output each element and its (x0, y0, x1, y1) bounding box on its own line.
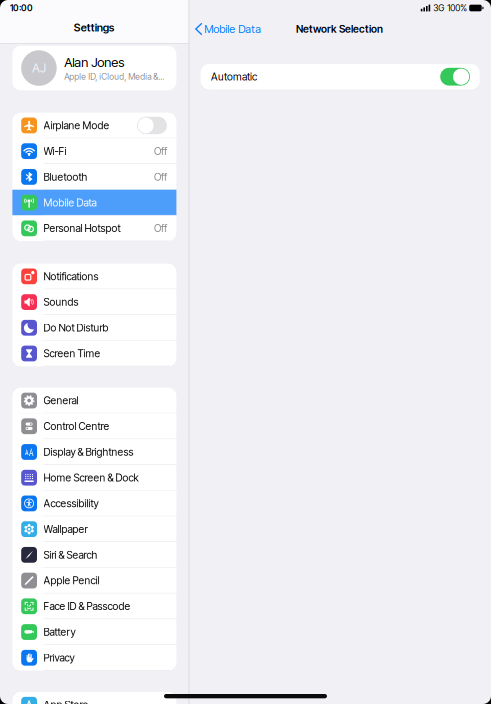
staticText: Home Screen & Dock (43, 471, 138, 484)
staticText: Automatic (211, 70, 257, 83)
staticText: Off (154, 222, 167, 235)
staticText: Mobile Data (43, 196, 96, 209)
staticText: Sounds (43, 296, 78, 308)
staticText: Off (154, 171, 167, 183)
button[interactable]: Apple Pencil (12, 568, 176, 593)
button[interactable]: Siri & Search (12, 542, 176, 568)
staticText: Face ID & Passcode (43, 600, 130, 613)
staticText: Battery (43, 626, 75, 638)
button[interactable]: AJ (12, 46, 176, 90)
button[interactable]: Face ID & Passcode (12, 593, 176, 619)
button[interactable]: Sounds (12, 289, 176, 315)
staticText: Settings (74, 21, 115, 34)
button[interactable]: Wi-Fi (12, 138, 176, 164)
staticText: AJ (32, 60, 46, 76)
staticText: Bluetooth (43, 171, 87, 183)
staticText: Control Centre (43, 420, 109, 433)
staticText: 3G (433, 3, 444, 13)
button[interactable]: Wallpaper (12, 516, 176, 542)
button[interactable]: Notifications (12, 263, 176, 289)
button[interactable]: Personal Hotspot (12, 215, 176, 241)
button[interactable]: Automatic (201, 64, 480, 89)
button[interactable]: Airplane Mode (12, 113, 176, 138)
button[interactable]: Do Not Disturb (12, 315, 176, 341)
button[interactable]: Mobile Data (196, 19, 261, 39)
button[interactable]: Display & Brightness (12, 439, 176, 465)
button[interactable]: Accessibility (12, 491, 176, 516)
staticText: Alan Jones (64, 54, 124, 70)
staticText: Notifications (43, 270, 98, 283)
button[interactable]: Battery (12, 619, 176, 645)
staticText: Wallpaper (43, 523, 87, 535)
button[interactable]: App Store (12, 692, 176, 704)
button[interactable]: Control Centre (12, 413, 176, 439)
staticText: Wi-Fi (43, 145, 66, 157)
staticText: Accessibility (43, 497, 98, 510)
staticText: Apple ID, iCloud, Media &... (64, 71, 164, 82)
staticText: Display & Brightness (43, 446, 133, 458)
button[interactable]: Privacy (12, 645, 176, 671)
staticText: Personal Hotspot (43, 222, 120, 235)
staticText: Off (154, 145, 167, 157)
staticText: Do Not Disturb (43, 321, 108, 334)
staticText: Apple Pencil (43, 574, 99, 587)
staticText: 100% (447, 3, 467, 13)
button[interactable]: General (12, 388, 176, 413)
button[interactable]: Bluetooth (12, 164, 176, 190)
staticText: App Store (43, 698, 88, 704)
staticText: Screen Time (43, 347, 100, 360)
button[interactable]: Screen Time (12, 341, 176, 366)
staticText: Mobile Data (204, 22, 261, 36)
staticText: Network Selection (296, 23, 383, 35)
staticText: Siri & Search (43, 549, 97, 561)
button[interactable]: Home Screen & Dock (12, 465, 176, 490)
staticText: Privacy (43, 651, 74, 664)
staticText: 10:00 (10, 3, 33, 13)
staticText: Airplane Mode (43, 119, 109, 132)
staticText: General (43, 394, 78, 407)
button[interactable]: Mobile Data (12, 190, 176, 215)
